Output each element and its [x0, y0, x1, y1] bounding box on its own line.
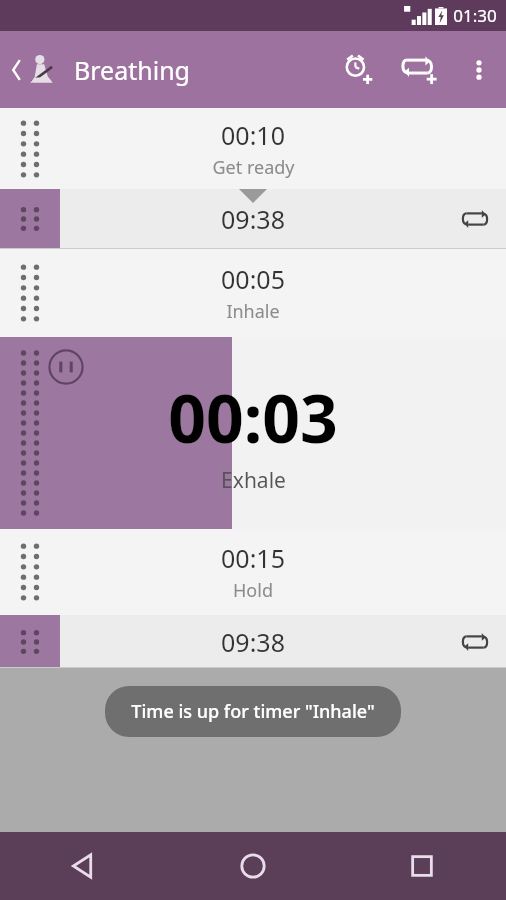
button[interactable]: Navigate up	[0, 31, 68, 108]
button[interactable]: 00:15	[0, 529, 506, 615]
staticText: 00:03	[168, 372, 338, 462]
staticText: Get ready	[212, 155, 295, 180]
staticText: 09:38	[221, 625, 285, 659]
button[interactable]: More options	[452, 31, 506, 108]
button[interactable]: Add timer	[328, 31, 390, 108]
button[interactable]: 09:38	[0, 615, 506, 668]
button[interactable]: Pause	[47, 348, 85, 386]
button[interactable]: Back	[0, 832, 168, 900]
staticText: Exhale	[221, 466, 286, 495]
staticText: Inhale	[226, 299, 280, 324]
button[interactable]: Recent apps	[337, 832, 506, 900]
button[interactable]: Add loop	[390, 31, 452, 108]
button[interactable]: 00:10	[0, 108, 506, 189]
staticText: 00:05	[221, 262, 285, 296]
staticText: 00:15	[221, 541, 285, 575]
button[interactable]: 09:38	[0, 189, 506, 249]
button[interactable]: 00:05	[0, 249, 506, 337]
staticText: Time is up for timer "Inhale"	[131, 699, 375, 724]
button[interactable]: Pause	[0, 337, 506, 529]
staticText: Breathing	[74, 53, 190, 87]
staticText: 09:38	[221, 202, 285, 236]
staticText: 00:10	[221, 118, 285, 152]
button[interactable]: Home	[168, 832, 337, 900]
staticText: Hold	[233, 578, 273, 603]
staticText: 01:30	[453, 4, 497, 27]
